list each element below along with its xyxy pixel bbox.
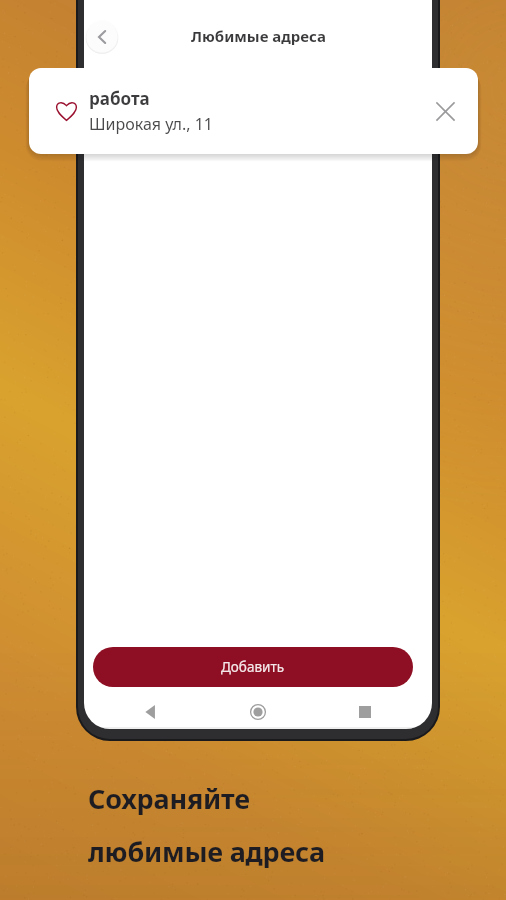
- staticText: любимые адреса: [88, 833, 325, 870]
- button[interactable]: Назад: [136, 697, 166, 727]
- button[interactable]: Главный экран: [243, 697, 273, 727]
- button[interactable]: Добавить: [93, 647, 413, 687]
- staticText: Широкая ул., 11: [89, 113, 213, 135]
- staticText: Добавить: [221, 658, 285, 676]
- button[interactable]: Назад: [85, 20, 119, 54]
- button[interactable]: работа: [29, 68, 478, 154]
- staticText: работа: [89, 87, 150, 110]
- button[interactable]: Обзор: [350, 697, 380, 727]
- staticText: Любимые адреса: [191, 26, 326, 46]
- staticText: Сохраняйте: [88, 780, 250, 817]
- button[interactable]: Удалить: [428, 94, 462, 128]
